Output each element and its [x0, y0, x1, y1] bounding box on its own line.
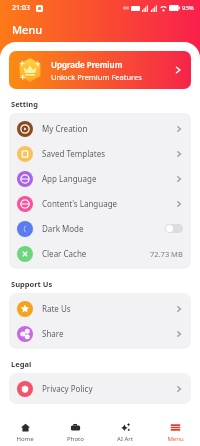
- button[interactable]: Dark Mode: [9, 216, 191, 241]
- button[interactable]: My Creation: [9, 116, 191, 141]
- button[interactable]: Photo: [50, 418, 100, 446]
- staticText: Unlock Premium Features: [51, 72, 142, 82]
- staticText: Saved Templates: [42, 148, 175, 159]
- button[interactable]: App Language: [9, 166, 191, 191]
- button[interactable]: Rate Us: [9, 296, 191, 321]
- staticText: Share: [42, 328, 175, 339]
- staticText: Menu: [167, 435, 184, 443]
- staticText: 21:03: [12, 3, 30, 13]
- staticText: Support Us: [11, 279, 53, 289]
- other: Open premium: [173, 65, 183, 75]
- button[interactable]: Upgrade Premium: [9, 51, 191, 89]
- button[interactable]: Menu: [150, 418, 200, 446]
- staticText: Content's Language: [42, 198, 175, 209]
- button[interactable]: Privacy Policy: [9, 376, 191, 401]
- button[interactable]: Clear Cache: [9, 241, 191, 266]
- staticText: Clear Cache: [42, 248, 150, 259]
- staticText: Upgrade Premium: [51, 59, 123, 70]
- staticText: AI Art: [117, 435, 133, 443]
- staticText: Menu: [12, 22, 43, 37]
- staticText: App Language: [42, 173, 175, 184]
- staticText: Photo: [67, 435, 84, 443]
- staticText: Legal: [11, 359, 32, 369]
- staticText: 72.73 MB: [150, 249, 183, 259]
- staticText: Privacy Policy: [42, 383, 175, 394]
- button[interactable]: AI Art: [100, 418, 150, 446]
- staticText: Setting: [11, 99, 38, 109]
- staticText: Dark Mode: [42, 223, 165, 234]
- button[interactable]: Content's Language: [9, 191, 191, 216]
- staticText: Home: [16, 435, 34, 443]
- button[interactable]: Home: [0, 418, 50, 446]
- button[interactable]: Saved Templates: [9, 141, 191, 166]
- staticText: My Creation: [42, 123, 175, 134]
- button[interactable]: Dark mode toggle: [165, 224, 183, 233]
- staticText: 93%: [182, 4, 194, 12]
- staticText: Rate Us: [42, 303, 175, 314]
- button[interactable]: Share: [9, 321, 191, 346]
